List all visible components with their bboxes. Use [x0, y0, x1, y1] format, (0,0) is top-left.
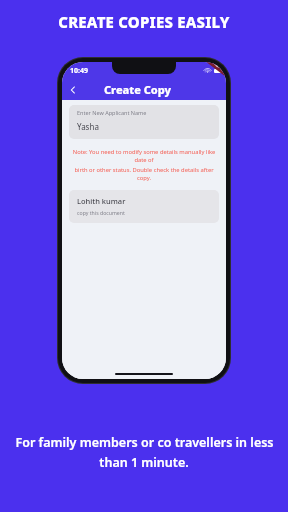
staticText: 10:49	[70, 66, 88, 76]
staticText: For family members or co travellers in l…	[15, 434, 274, 451]
staticText: Lohith kumar	[77, 196, 126, 206]
staticText: CREATE COPIES EASILY	[58, 12, 230, 32]
staticText: Note: You need to modify some details ma…	[69, 148, 219, 164]
staticText: copy this document	[77, 209, 125, 216]
staticText: birth or other status. Double check the …	[69, 166, 219, 182]
button[interactable]: Lohith kumar	[69, 190, 219, 223]
staticText: Yasha	[77, 121, 99, 132]
staticText: Create Copy	[104, 82, 172, 97]
staticText: than 1 minute.	[99, 454, 189, 471]
button[interactable]: Enter New Applicant Name	[69, 105, 219, 139]
staticText: Enter New Applicant Name	[77, 109, 147, 116]
button[interactable]: Back	[65, 82, 81, 98]
